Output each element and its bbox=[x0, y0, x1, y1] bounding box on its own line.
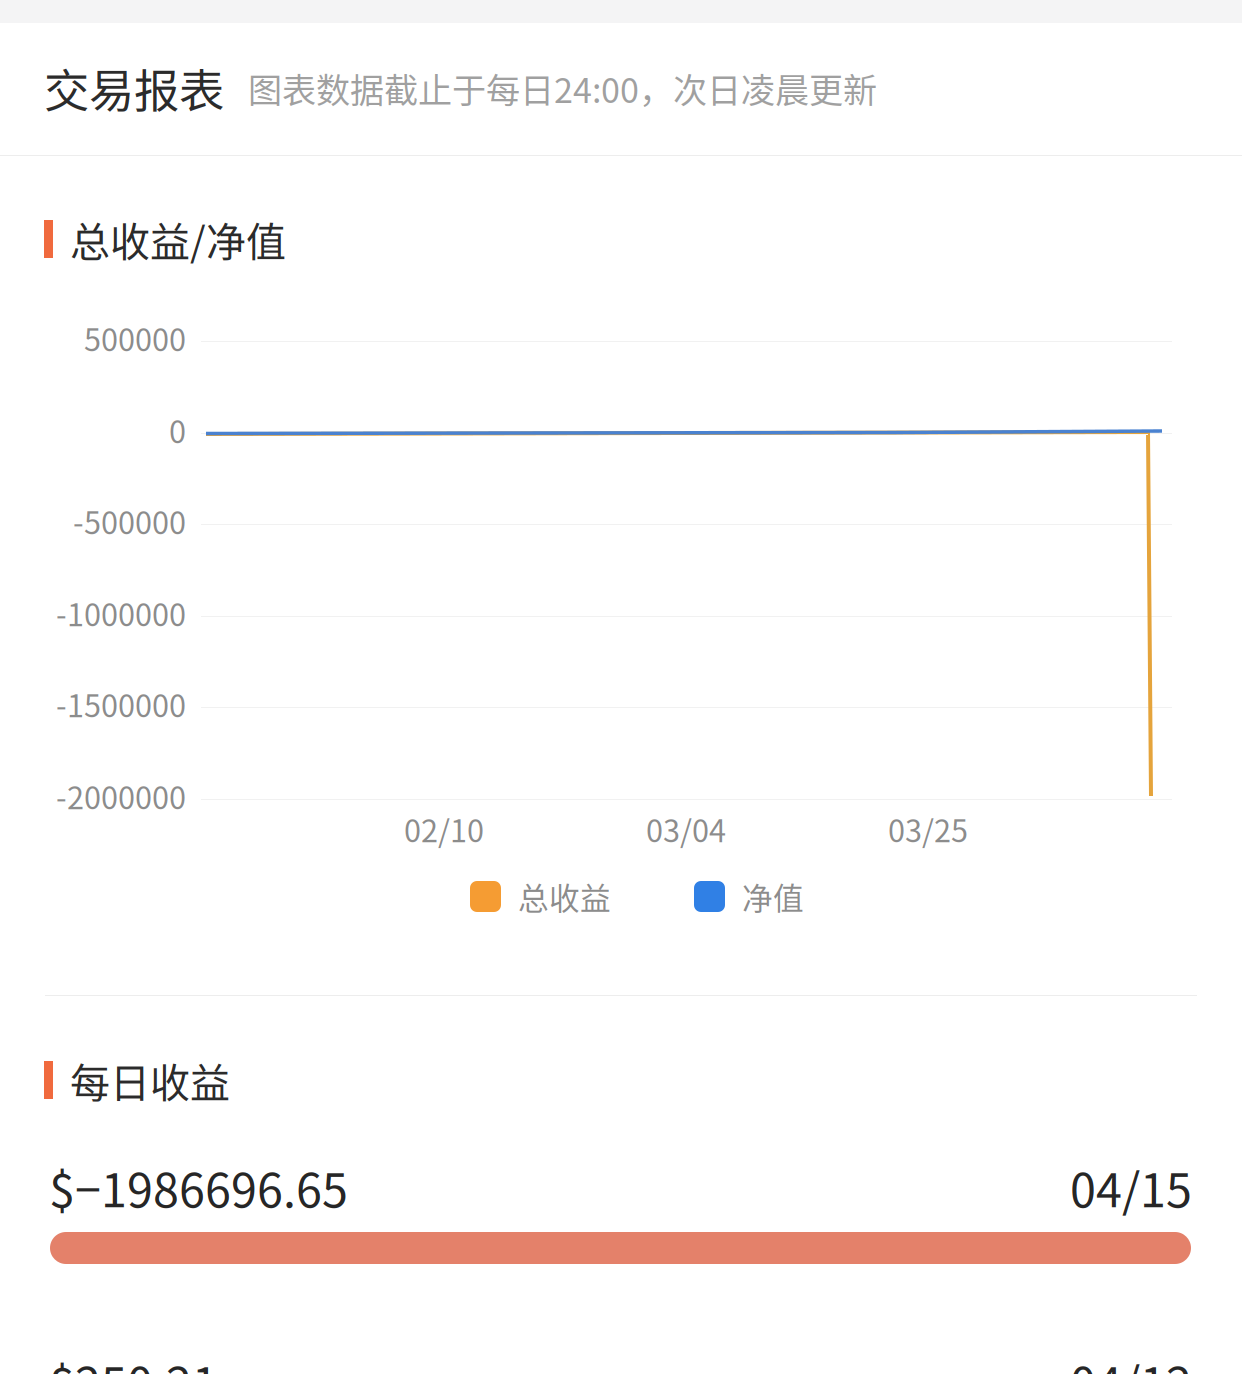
staticText: 总收益 bbox=[518, 874, 611, 919]
staticText: 500000 bbox=[84, 316, 186, 360]
staticText: $−1986696.65 bbox=[49, 1153, 348, 1221]
button[interactable]: $−1986696.65 bbox=[49, 1164, 1192, 1264]
staticText: 04/15 bbox=[1070, 1153, 1192, 1221]
staticText: -500000 bbox=[73, 499, 186, 543]
staticText: 图表数据截止于每日24:00，次日凌晨更新 bbox=[248, 63, 877, 113]
staticText: 03/04 bbox=[646, 807, 726, 851]
staticText: 每日收益 bbox=[70, 1051, 230, 1109]
staticText: 总收益/净值 bbox=[70, 210, 286, 268]
staticText: $250.21 bbox=[49, 1347, 218, 1374]
staticText: 02/10 bbox=[404, 807, 484, 851]
staticText: 04/12 bbox=[1070, 1347, 1192, 1374]
staticText: 03/25 bbox=[888, 807, 968, 851]
staticText: -2000000 bbox=[56, 774, 186, 818]
staticText: 0 bbox=[169, 408, 186, 452]
staticText: -1000000 bbox=[56, 591, 186, 635]
staticText: -1500000 bbox=[56, 682, 186, 726]
button[interactable]: $250.21 bbox=[49, 1358, 1192, 1374]
staticText: 交易报表 bbox=[44, 55, 224, 121]
staticText: 净值 bbox=[742, 874, 804, 919]
